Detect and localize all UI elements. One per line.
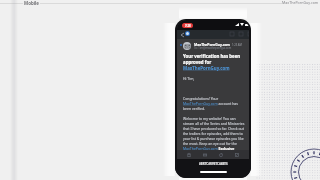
button[interactable]: Archive: [201, 151, 209, 159]
button[interactable]: Back: [179, 31, 186, 38]
staticText: MaxThePornGuy.com: [183, 65, 230, 71]
button[interactable]: Action: [229, 31, 235, 37]
staticText: Your verification has been: [183, 53, 241, 59]
staticText: 1:25 AM: [232, 43, 242, 47]
staticText: To: Tim@maxtheporngui.com: [194, 46, 232, 50]
staticText: MaxThePornGuy.com Exclusive: [183, 146, 235, 151]
staticText: Congratulations! Your: [183, 96, 219, 101]
staticText: been verified.: [183, 106, 206, 111]
button[interactable]: Reply: [217, 151, 225, 159]
button[interactable]: Action: [247, 31, 249, 37]
staticText: 7:28: [185, 24, 191, 28]
staticText: MaxThePornGuy.com: [282, 0, 319, 5]
staticText: #BRTC#RFBTC#4BTS: [199, 162, 228, 166]
staticText: approved for: [183, 59, 212, 65]
staticText: Mobile: [24, 0, 39, 6]
staticText: Welcome to my website! You can stream al…: [183, 116, 245, 146]
button[interactable]: Compose: [233, 151, 241, 159]
staticText: MaxThePornGuy.com: [194, 42, 230, 47]
button[interactable]: Delete: [185, 151, 193, 159]
staticText: MaxThePornGuy.com account has: [183, 101, 238, 106]
button[interactable]: Action: [238, 31, 244, 37]
staticText: Hi Tim,: [183, 76, 195, 81]
